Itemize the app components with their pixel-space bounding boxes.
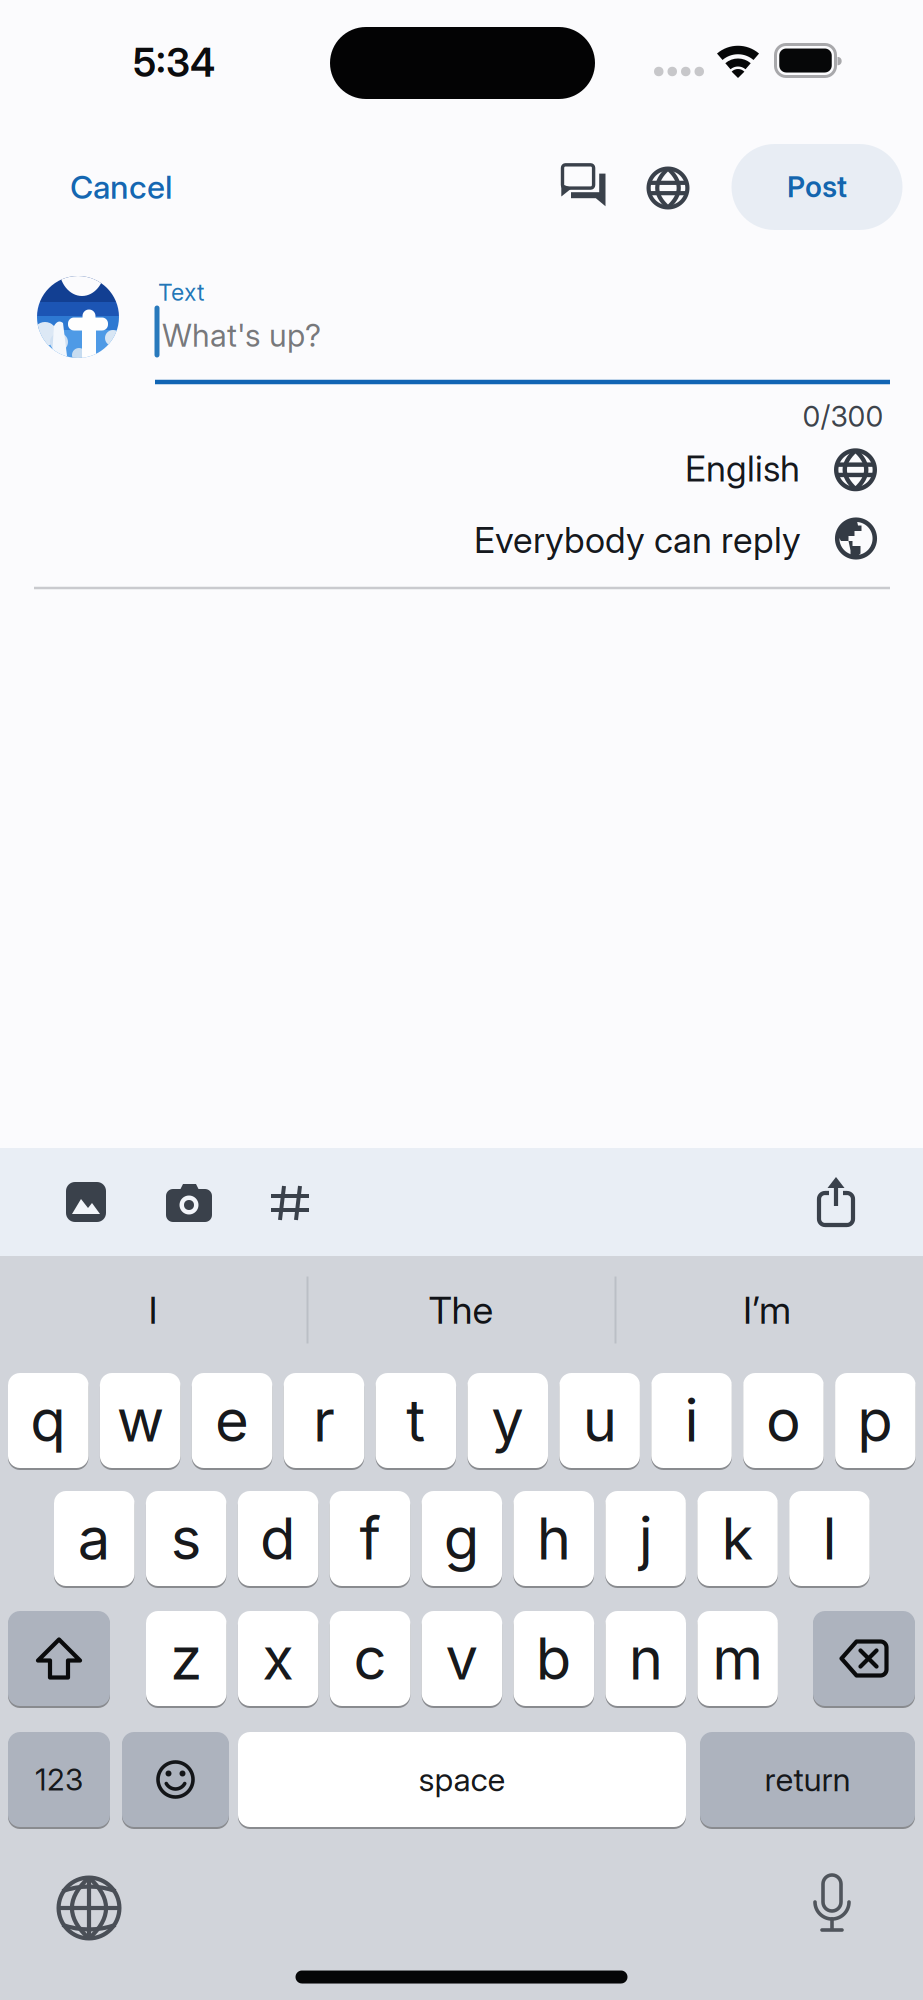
button[interactable]: English: [400, 447, 800, 490]
button[interactable]: space: [238, 1731, 686, 1828]
button[interactable]: g: [422, 1490, 502, 1587]
staticText: I’m: [743, 1287, 791, 1333]
button[interactable]: What's up?: [162, 317, 562, 354]
staticText: e: [215, 1385, 249, 1456]
button[interactable]: return: [700, 1731, 915, 1828]
button[interactable]: I: [13, 1265, 293, 1355]
button[interactable]: Post: [731, 144, 902, 230]
button[interactable]: p: [835, 1372, 916, 1469]
button[interactable]: [561, 164, 607, 208]
staticText: t: [406, 1385, 425, 1456]
button[interactable]: o: [743, 1372, 824, 1469]
button[interactable]: q: [8, 1372, 88, 1469]
button[interactable]: i: [651, 1372, 732, 1469]
staticText: 0/300: [802, 399, 883, 434]
staticText: c: [354, 1623, 387, 1694]
button[interactable]: l: [789, 1490, 870, 1587]
staticText: z: [170, 1623, 202, 1694]
staticText: v: [445, 1623, 478, 1694]
button[interactable]: x: [238, 1610, 318, 1707]
button[interactable]: I’m: [627, 1265, 907, 1355]
button[interactable]: [166, 1182, 212, 1222]
button[interactable]: k: [697, 1490, 778, 1587]
button[interactable]: [270, 1185, 310, 1221]
staticText: w: [117, 1385, 164, 1456]
staticText: j: [639, 1503, 653, 1574]
button[interactable]: 123: [8, 1731, 110, 1828]
staticText: u: [583, 1385, 617, 1456]
staticText: Cancel: [70, 168, 172, 206]
button[interactable]: c: [330, 1610, 410, 1707]
button[interactable]: Everybody can reply: [181, 518, 801, 561]
staticText: The: [428, 1287, 493, 1333]
button[interactable]: e: [192, 1372, 272, 1469]
staticText: return: [764, 1760, 850, 1799]
staticText: h: [537, 1503, 571, 1574]
button[interactable]: u: [559, 1372, 640, 1469]
staticText: n: [629, 1623, 663, 1694]
staticText: f: [359, 1503, 380, 1574]
staticText: s: [171, 1503, 202, 1574]
button[interactable]: The: [321, 1265, 601, 1355]
button[interactable]: [816, 1176, 856, 1228]
button[interactable]: [813, 1610, 915, 1707]
button[interactable]: v: [422, 1610, 502, 1707]
staticText: q: [30, 1385, 66, 1456]
button[interactable]: a: [54, 1490, 134, 1587]
button[interactable]: [808, 1872, 856, 1944]
staticText: p: [857, 1385, 893, 1456]
staticText: b: [536, 1623, 572, 1694]
button[interactable]: [66, 1182, 106, 1222]
button[interactable]: t: [376, 1372, 456, 1469]
button[interactable]: [122, 1731, 229, 1828]
staticText: g: [444, 1503, 480, 1574]
button[interactable]: Cancel: [70, 168, 310, 206]
staticText: k: [722, 1503, 754, 1574]
staticText: I: [148, 1287, 157, 1333]
button[interactable]: z: [146, 1610, 226, 1707]
staticText: Everybody can reply: [474, 518, 801, 561]
button[interactable]: y: [467, 1372, 548, 1469]
staticText: English: [685, 447, 800, 490]
button[interactable]: m: [697, 1610, 778, 1707]
button[interactable]: w: [100, 1372, 180, 1469]
staticText: a: [78, 1503, 111, 1574]
button[interactable]: s: [146, 1490, 226, 1587]
button[interactable]: n: [605, 1610, 686, 1707]
staticText: d: [260, 1503, 296, 1574]
staticText: 5:34: [133, 39, 215, 86]
button[interactable]: h: [513, 1490, 594, 1587]
button[interactable]: f: [330, 1490, 410, 1587]
button[interactable]: [646, 166, 689, 209]
staticText: 123: [35, 1761, 83, 1798]
button[interactable]: d: [238, 1490, 318, 1587]
staticText: What's up?: [162, 317, 321, 354]
button[interactable]: [8, 1610, 110, 1707]
staticText: space: [418, 1760, 505, 1799]
staticText: Post: [787, 170, 847, 204]
staticText: i: [685, 1385, 699, 1456]
staticText: l: [822, 1503, 836, 1574]
button[interactable]: [56, 1875, 121, 1940]
button[interactable]: b: [514, 1610, 594, 1707]
button[interactable]: r: [284, 1372, 364, 1469]
staticText: o: [766, 1385, 801, 1456]
staticText: r: [313, 1385, 335, 1456]
staticText: Text: [158, 279, 204, 306]
button[interactable]: j: [605, 1490, 686, 1587]
staticText: y: [491, 1385, 524, 1456]
staticText: x: [262, 1623, 294, 1694]
staticText: m: [712, 1623, 763, 1694]
